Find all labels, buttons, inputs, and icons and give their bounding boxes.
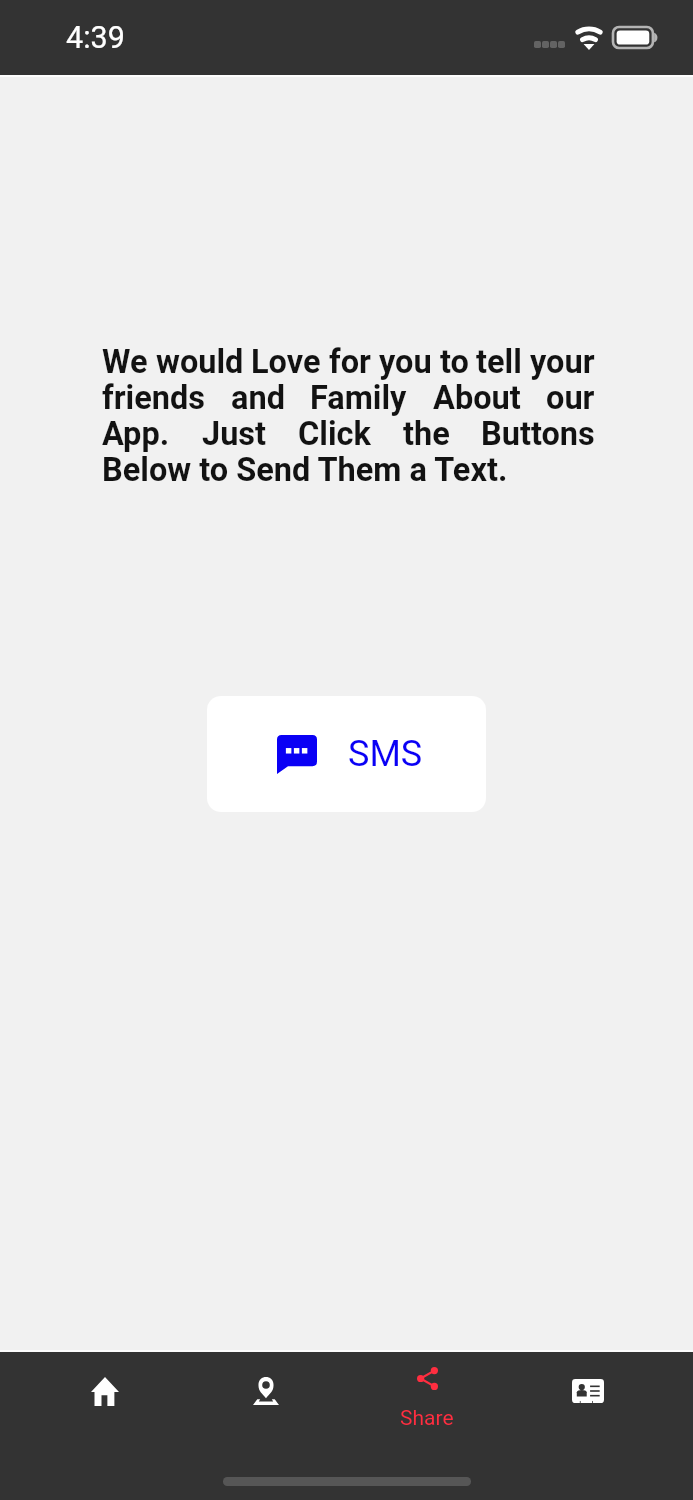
button[interactable]: SMS	[207, 696, 486, 812]
staticText: Buttons	[481, 415, 595, 453]
button[interactable]: Contacts	[507, 1352, 668, 1450]
staticText: SMS	[348, 733, 423, 775]
staticText: to	[440, 343, 469, 381]
staticText: Family	[310, 379, 407, 417]
staticText: our	[546, 379, 595, 417]
staticText: your	[530, 343, 595, 381]
staticText: Just	[202, 415, 267, 453]
staticText: tell	[476, 343, 522, 381]
staticText: Share	[400, 1406, 454, 1431]
staticText: Below to Send Them a Text.	[102, 451, 508, 487]
staticText: and	[231, 379, 285, 417]
staticText: would	[156, 343, 244, 381]
staticText: you	[379, 343, 432, 381]
staticText: for	[329, 343, 371, 381]
staticText: friends	[102, 379, 205, 417]
staticText: About	[433, 379, 521, 417]
button[interactable]: Location	[185, 1352, 346, 1450]
button[interactable]: Share	[346, 1352, 507, 1450]
staticText: We	[102, 343, 148, 381]
button[interactable]: Home	[25, 1352, 185, 1450]
staticText: the	[403, 415, 450, 453]
staticText: 4:39	[66, 20, 125, 56]
staticText: App.	[102, 415, 170, 453]
staticText: Click	[298, 415, 371, 453]
staticText: Love	[251, 343, 321, 381]
